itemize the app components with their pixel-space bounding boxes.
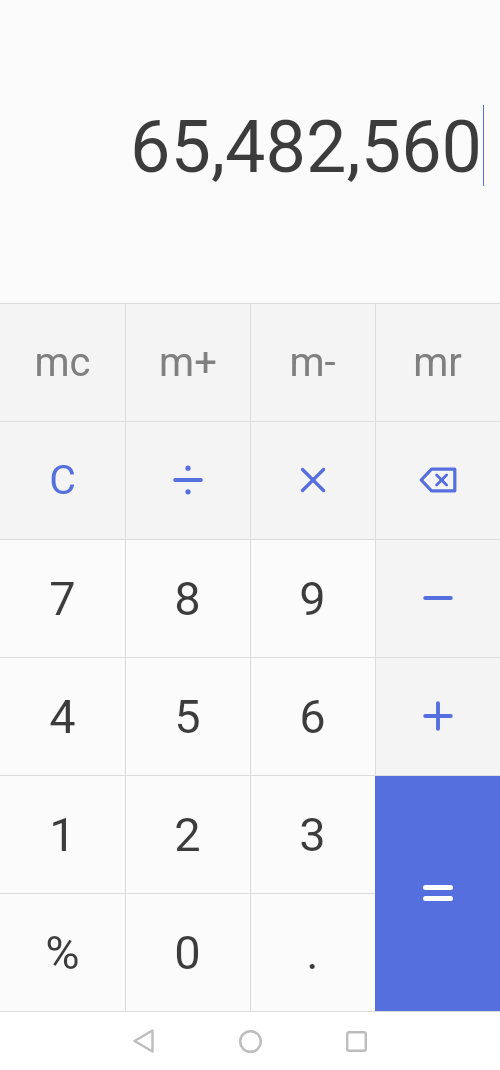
staticText: 2 [174, 807, 201, 862]
button[interactable]: 3 [250, 775, 375, 893]
staticText: 5 [174, 689, 201, 744]
button[interactable]: m- [250, 303, 375, 421]
button[interactable]: 0 [125, 893, 250, 1011]
button[interactable]: C [0, 421, 125, 539]
button[interactable]: mr [375, 303, 500, 421]
button[interactable]: Recents [321, 1012, 391, 1070]
staticText: 1 [49, 807, 76, 862]
button[interactable]: Backspace [375, 421, 500, 539]
button[interactable]: 5 [125, 657, 250, 775]
staticText: C [49, 456, 76, 504]
button[interactable]: 1 [0, 775, 125, 893]
button[interactable]: 4 [0, 657, 125, 775]
button[interactable]: mc [0, 303, 125, 421]
button[interactable]: m+ [125, 303, 250, 421]
staticText: mc [34, 339, 91, 386]
button[interactable]: % [0, 893, 125, 1011]
button[interactable]: 2 [125, 775, 250, 893]
staticText: m+ [159, 339, 217, 386]
button[interactable]: Multiply [250, 421, 375, 539]
staticText: 6 [299, 689, 326, 744]
button[interactable]: . [250, 893, 375, 1011]
staticText: . [306, 925, 319, 980]
button[interactable]: Minus [375, 539, 500, 657]
staticText: 9 [299, 571, 326, 626]
button[interactable]: Back [108, 1012, 178, 1070]
button[interactable]: Home [215, 1012, 285, 1070]
button[interactable]: 9 [250, 539, 375, 657]
staticText: 65,482,560 [130, 105, 483, 189]
staticText: 0 [174, 925, 201, 980]
button[interactable]: Plus [375, 657, 500, 775]
staticText: 4 [49, 689, 76, 744]
staticText: % [45, 925, 80, 980]
button[interactable]: Divide [125, 421, 250, 539]
staticText: 8 [174, 571, 201, 626]
button[interactable]: 7 [0, 539, 125, 657]
staticText: 7 [49, 571, 76, 626]
button[interactable]: Equals [375, 775, 500, 1011]
button[interactable]: 8 [125, 539, 250, 657]
staticText: m- [289, 339, 336, 386]
staticText: mr [413, 339, 462, 386]
staticText: 3 [299, 807, 326, 862]
button[interactable]: 6 [250, 657, 375, 775]
